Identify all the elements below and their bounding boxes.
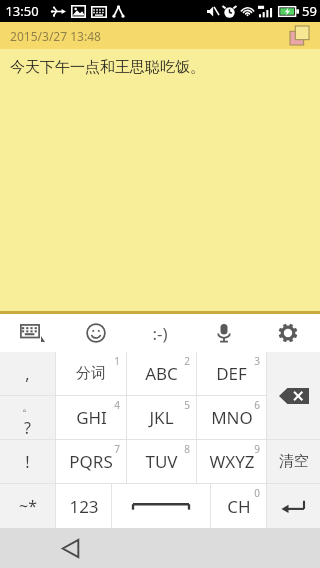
staticText: 8 bbox=[184, 442, 190, 456]
staticText: 1 bbox=[114, 354, 120, 368]
button[interactable]: JKL bbox=[127, 396, 196, 439]
staticText: TUV bbox=[145, 450, 178, 473]
staticText: , bbox=[25, 363, 30, 385]
button[interactable]: MNO bbox=[197, 396, 266, 439]
button[interactable]: 分词 bbox=[56, 352, 126, 395]
button[interactable]: ABC bbox=[127, 352, 196, 395]
button[interactable]: ! bbox=[0, 440, 55, 483]
staticText: 0 bbox=[254, 486, 260, 500]
staticText: MNO bbox=[211, 406, 253, 429]
button[interactable]: 今天下午一点和王思聪吃饭。 bbox=[0, 49, 320, 311]
button[interactable]: 123 bbox=[56, 484, 111, 528]
button[interactable]: ? bbox=[0, 417, 55, 439]
button[interactable]: Voice input bbox=[192, 314, 256, 352]
staticText: 7 bbox=[114, 442, 120, 456]
staticText: ! bbox=[25, 451, 30, 473]
staticText: JKL bbox=[149, 406, 174, 429]
button[interactable]: ~* bbox=[0, 484, 55, 528]
staticText: CH bbox=[227, 495, 251, 518]
button[interactable]: Change note colour bbox=[290, 26, 309, 45]
button[interactable]: Emoji bbox=[64, 314, 128, 352]
button[interactable]: Back bbox=[54, 532, 86, 564]
button[interactable]: Backspace bbox=[267, 352, 320, 439]
button[interactable]: Switch keyboard bbox=[0, 314, 64, 352]
staticText: ABC bbox=[145, 362, 178, 385]
staticText: 清空 bbox=[279, 452, 309, 471]
staticText: 。 bbox=[22, 399, 34, 414]
staticText: 13:50 bbox=[5, 2, 39, 20]
button[interactable]: CH bbox=[211, 484, 266, 528]
staticText: 4 bbox=[114, 398, 120, 412]
button[interactable]: DEF bbox=[197, 352, 266, 395]
staticText: DEF bbox=[216, 362, 247, 385]
button[interactable]: Settings bbox=[256, 314, 320, 352]
button[interactable]: Space bbox=[112, 484, 210, 528]
button[interactable]: PQRS bbox=[56, 440, 126, 483]
button[interactable]: Emoticons bbox=[128, 314, 192, 352]
button[interactable]: WXYZ bbox=[197, 440, 266, 483]
staticText: ~* bbox=[19, 495, 37, 517]
staticText: GHI bbox=[76, 406, 107, 429]
staticText: WXYZ bbox=[209, 450, 255, 473]
staticText: 3 bbox=[254, 354, 260, 368]
staticText: 5 bbox=[184, 398, 190, 412]
button[interactable]: 清空 bbox=[267, 440, 320, 483]
button[interactable]: , bbox=[0, 352, 55, 395]
staticText: 2 bbox=[184, 354, 190, 368]
staticText: 59 bbox=[302, 2, 317, 20]
button[interactable]: TUV bbox=[127, 440, 196, 483]
button[interactable]: 。 bbox=[0, 396, 55, 417]
staticText: ? bbox=[24, 417, 31, 439]
staticText: 123 bbox=[69, 495, 99, 518]
staticText: 分词 bbox=[76, 364, 106, 383]
staticText: :-) bbox=[152, 322, 168, 345]
staticText: 2015/3/27 13:48 bbox=[10, 28, 101, 44]
staticText: PQRS bbox=[69, 450, 113, 473]
staticText: 今天下午一点和王思聪吃饭。 bbox=[10, 58, 205, 77]
button[interactable]: 2015/3/27 13:48 bbox=[0, 22, 320, 49]
staticText: 6 bbox=[254, 398, 260, 412]
staticText: 9 bbox=[254, 442, 260, 456]
button[interactable]: GHI bbox=[56, 396, 126, 439]
button[interactable]: Enter bbox=[267, 484, 320, 528]
